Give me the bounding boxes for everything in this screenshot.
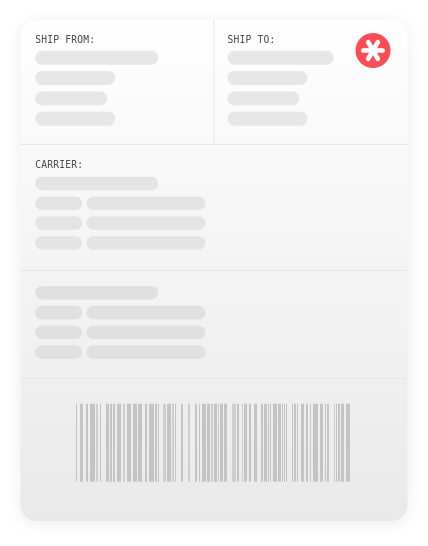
staticText: SHIP TO: — [227, 34, 275, 45]
staticText: CARRIER: — [35, 159, 83, 170]
staticText: SHIP FROM: — [35, 34, 95, 45]
